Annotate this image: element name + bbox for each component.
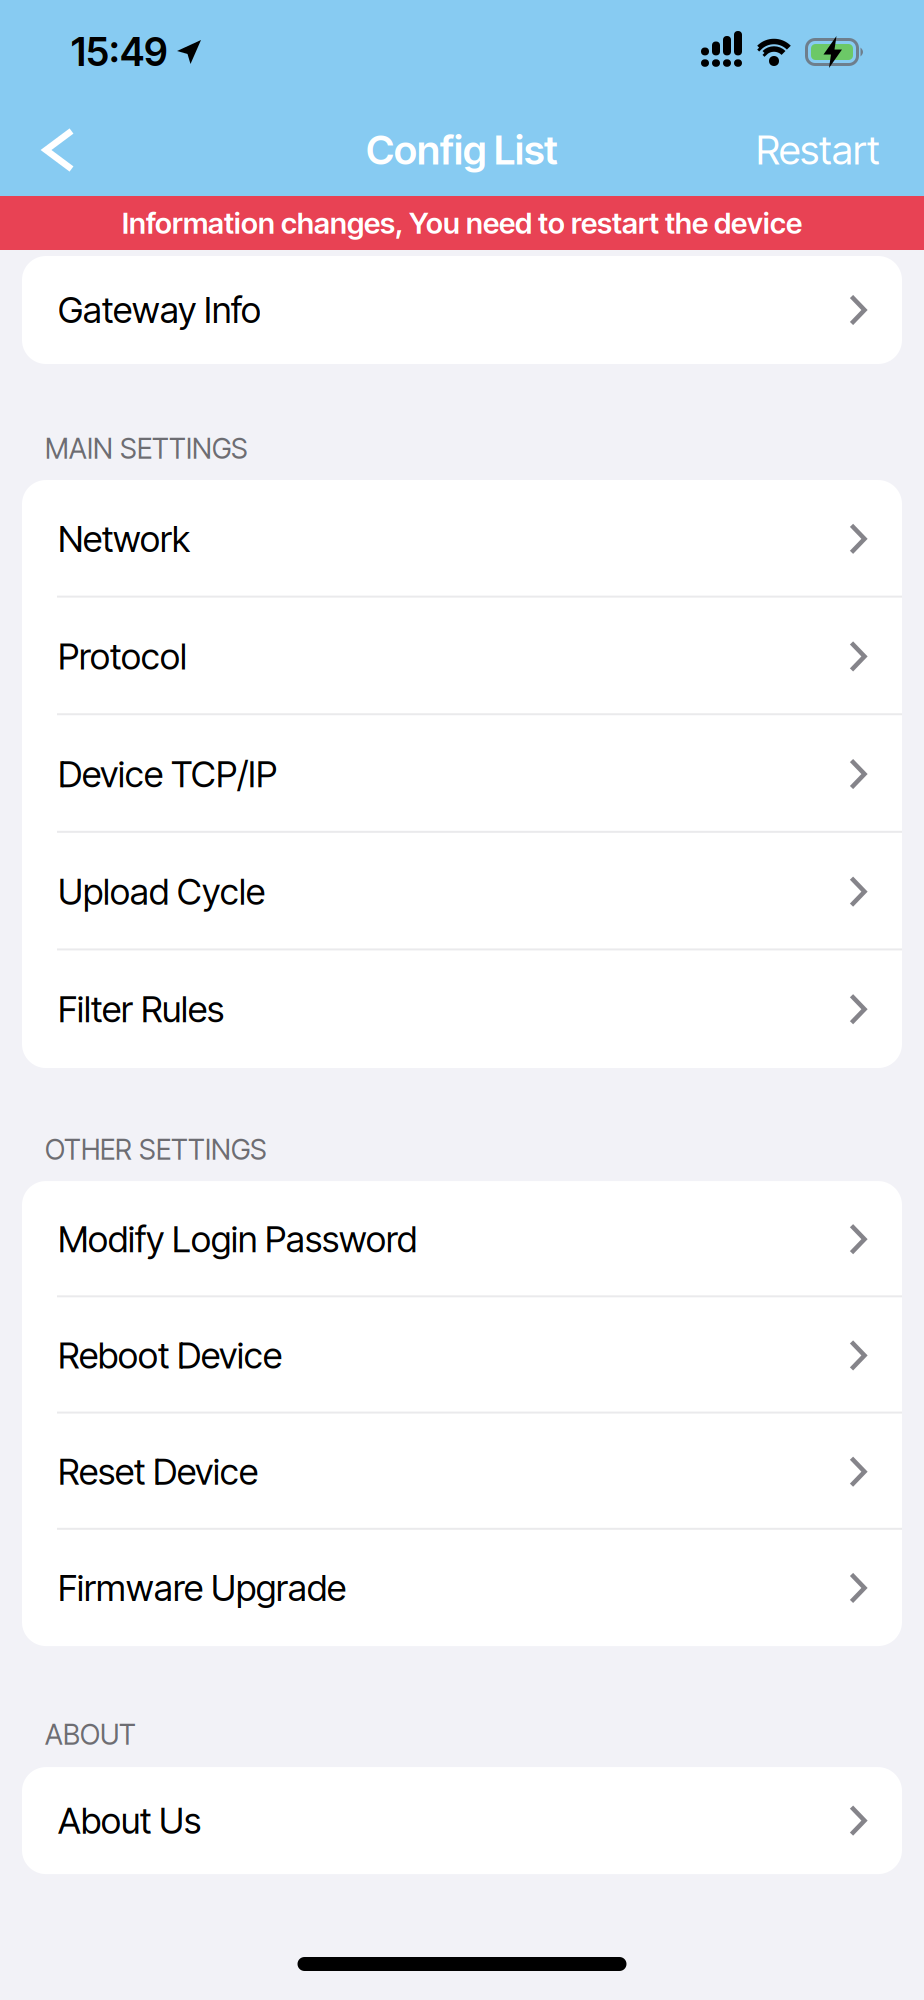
staticText: About Us <box>58 1799 201 1842</box>
staticText: Filter Rules <box>58 988 224 1030</box>
button[interactable]: Reboot Device <box>22 1297 902 1413</box>
staticText: 15:49 <box>71 29 168 75</box>
staticText: Firmware Upgrade <box>58 1567 346 1609</box>
staticText: Reboot Device <box>58 1334 282 1377</box>
button[interactable]: Firmware Upgrade <box>22 1530 902 1646</box>
staticText: Config List <box>366 126 558 174</box>
staticText: Modify Login Password <box>58 1218 417 1260</box>
staticText: Device TCP/IP <box>58 753 277 795</box>
staticText: Protocol <box>58 635 187 678</box>
button[interactable]: Filter Rules <box>22 950 902 1068</box>
button[interactable]: Upload Cycle <box>22 833 902 950</box>
button[interactable]: Protocol <box>22 598 902 715</box>
staticText: Restart <box>756 126 880 174</box>
button[interactable]: Network <box>22 480 902 598</box>
button[interactable]: Back <box>0 128 76 172</box>
staticText: Network <box>58 518 190 560</box>
staticText: Information changes, You need to restart… <box>122 206 802 240</box>
button[interactable]: Device TCP/IP <box>22 715 902 833</box>
staticText: Upload Cycle <box>58 870 265 913</box>
button[interactable]: Reset Device <box>22 1414 902 1530</box>
staticText: OTHER SETTINGS <box>45 1133 267 1166</box>
staticText: Reset Device <box>58 1450 258 1493</box>
staticText: ABOUT <box>45 1718 136 1751</box>
button[interactable]: Restart <box>756 126 924 174</box>
staticText: MAIN SETTINGS <box>45 432 248 465</box>
button[interactable]: About Us <box>22 1767 902 1874</box>
button[interactable]: Gateway Info <box>22 256 902 364</box>
button[interactable]: Modify Login Password <box>22 1181 902 1297</box>
staticText: Gateway Info <box>58 289 261 331</box>
